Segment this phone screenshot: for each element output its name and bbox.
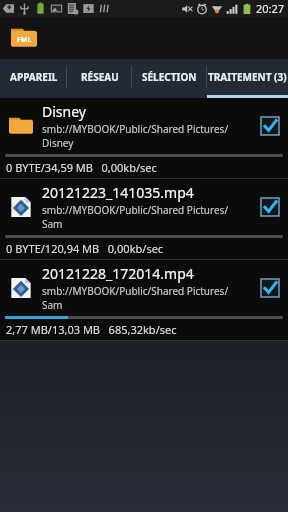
- button[interactable]: RÉSEAU: [67, 59, 132, 95]
- button[interactable]: Selected: [258, 276, 282, 300]
- staticText: 20:27: [256, 1, 285, 16]
- staticText: 20121223_141035.mp4: [42, 183, 194, 202]
- staticText: Disney: [42, 136, 74, 150]
- staticText: APPAREIL: [10, 70, 58, 84]
- staticText: smb://MYBOOK/Public/Shared Pictures/: [42, 122, 229, 136]
- staticText: Sam: [42, 217, 63, 231]
- button[interactable]: Selected: [258, 195, 282, 219]
- staticText: Sam: [42, 298, 63, 312]
- staticText: SÉLECTION: [142, 70, 197, 84]
- staticText: Disney: [42, 102, 86, 121]
- staticText: FML: [17, 35, 32, 45]
- other: App icon: [11, 25, 37, 51]
- staticText: RÉSEAU: [81, 70, 119, 84]
- staticText: 20121228_172014.mp4: [42, 264, 194, 283]
- button[interactable]: 20121223_141035.mp4: [0, 179, 288, 260]
- button[interactable]: Selected: [258, 114, 282, 138]
- staticText: 2,77 MB/13,03 MB 685,32kb/sec: [6, 322, 177, 337]
- button[interactable]: TRAITEMENT (3): [207, 59, 288, 95]
- staticText: 0 BYTE/120,94 MB 0,00kb/sec: [6, 241, 164, 256]
- staticText: 0 BYTE/34,59 MB 0,00kb/sec: [6, 160, 157, 175]
- button[interactable]: SÉLECTION: [132, 59, 207, 95]
- button[interactable]: Disney: [0, 98, 288, 179]
- button[interactable]: APPAREIL: [0, 59, 67, 95]
- staticText: smb://MYBOOK/Public/Shared Pictures/: [42, 203, 229, 217]
- button[interactable]: 20121228_172014.mp4: [0, 260, 288, 341]
- staticText: TRAITEMENT (3): [208, 70, 287, 84]
- staticText: smb://MYBOOK/Public/Shared Pictures/: [42, 284, 229, 298]
